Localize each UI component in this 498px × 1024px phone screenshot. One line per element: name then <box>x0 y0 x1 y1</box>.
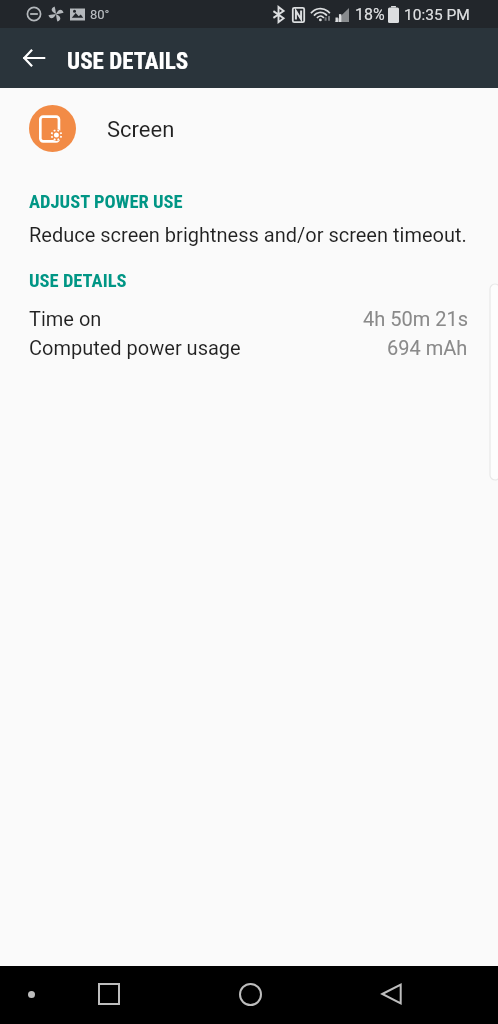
staticText: USE DETAILS <box>67 48 189 75</box>
staticText: USE DETAILS <box>29 270 127 292</box>
staticText: 4h 50m 21s <box>363 307 468 330</box>
staticText: 18% <box>355 5 385 24</box>
button[interactable]: Time on <box>0 307 498 335</box>
button[interactable]: Computed power usage <box>0 336 498 364</box>
staticText: 10:35 PM <box>404 6 470 24</box>
staticText: ADJUST POWER USE <box>29 191 183 213</box>
staticText: 80° <box>90 7 110 22</box>
staticText: 694 mAh <box>387 336 468 359</box>
staticText: Screen <box>107 117 175 143</box>
button[interactable]: Back <box>363 966 419 1022</box>
button[interactable]: Menu <box>3 966 59 1022</box>
staticText: Computed power usage <box>29 336 241 359</box>
button[interactable]: Screen <box>0 98 498 158</box>
button[interactable]: Navigate up <box>10 34 58 82</box>
button[interactable]: Recent apps <box>81 966 137 1022</box>
staticText: Reduce screen brightness and/or screen t… <box>29 223 467 246</box>
button[interactable]: Home <box>222 966 278 1022</box>
staticText: Time on <box>29 307 102 330</box>
